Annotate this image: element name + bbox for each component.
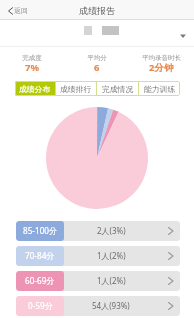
button[interactable]: 60-69分 (16, 271, 180, 291)
button[interactable]: 0-59分 (16, 296, 180, 316)
staticText: 2人(3%) (97, 225, 126, 236)
staticText: 1人(2%) (97, 275, 126, 286)
button[interactable]: 能力训练 (139, 81, 180, 96)
staticText: 完成情况 (102, 84, 134, 94)
staticText: 成绩分布 (19, 84, 51, 94)
staticText: 完成度 (22, 54, 42, 62)
staticText: 54人(93%) (92, 300, 130, 311)
staticText: 成绩排行 (60, 84, 92, 94)
staticText: 能力训练 (144, 84, 176, 94)
staticText: 60-69分 (25, 275, 55, 286)
staticText: 7% (25, 61, 40, 74)
staticText: 6 (94, 61, 100, 74)
staticText: 平均分 (87, 54, 107, 62)
staticText: 2分钟 (149, 61, 174, 74)
staticText: 0-59分 (28, 300, 53, 311)
button[interactable]: 展开选择 (180, 34, 186, 38)
staticText: 成绩报告 (79, 5, 115, 16)
button[interactable]: 85-100分 (16, 221, 180, 241)
staticText: 平均录音时长 (142, 54, 181, 62)
button[interactable]: 完成情况 (97, 81, 138, 96)
staticText: 1人(2%) (97, 250, 126, 261)
staticText: 70-84分 (25, 250, 55, 261)
button[interactable]: 成绩排行 (56, 81, 96, 96)
button[interactable]: 70-84分 (16, 246, 180, 266)
button[interactable]: 返回 (0, 3, 34, 18)
staticText: 返回 (14, 6, 28, 15)
staticText: 85-100分 (23, 225, 58, 236)
button[interactable]: 成绩分布 (15, 81, 55, 96)
